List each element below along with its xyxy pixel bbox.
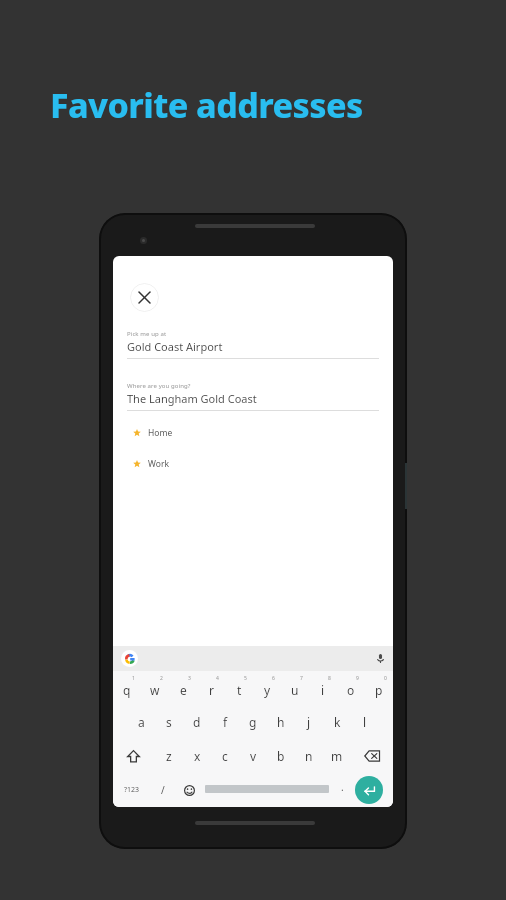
staticText: r — [209, 682, 214, 698]
button[interactable]: 3 — [169, 671, 197, 705]
button[interactable]: x — [183, 739, 211, 773]
staticText: q — [123, 682, 131, 698]
staticText: z — [166, 748, 172, 764]
button[interactable]: b — [267, 739, 295, 773]
button[interactable]: Shift — [117, 739, 149, 773]
staticText: 7 — [300, 675, 303, 682]
button[interactable]: 0 — [365, 671, 393, 705]
button[interactable]: Voice input — [374, 652, 387, 665]
button[interactable]: 8 — [309, 671, 337, 705]
staticText: v — [250, 748, 257, 764]
staticText: ?123 — [124, 785, 140, 795]
staticText: Favorite addresses — [50, 82, 363, 128]
staticText: The Langham Gold Coast — [127, 391, 257, 406]
button[interactable]: h — [267, 705, 295, 739]
button[interactable]: 7 — [281, 671, 309, 705]
staticText: Home — [148, 427, 173, 439]
button[interactable]: Google — [121, 650, 138, 667]
button[interactable]: Work — [127, 454, 379, 474]
button[interactable]: a — [127, 705, 155, 739]
button[interactable]: 5 — [225, 671, 253, 705]
staticText: x — [194, 748, 201, 764]
button[interactable]: Home — [127, 423, 379, 443]
button[interactable]: g — [239, 705, 267, 739]
staticText: t — [237, 682, 242, 698]
button[interactable]: d — [183, 705, 211, 739]
button[interactable]: Close — [130, 283, 159, 312]
staticText: a — [138, 714, 145, 730]
staticText: m — [331, 748, 343, 764]
button[interactable]: v — [239, 739, 267, 773]
staticText: g — [249, 714, 257, 730]
staticText: 2 — [160, 675, 163, 682]
button[interactable]: f — [211, 705, 239, 739]
button[interactable]: 1 — [113, 671, 141, 705]
staticText: Gold Coast Airport — [127, 339, 223, 354]
staticText: / — [161, 783, 165, 797]
button[interactable]: . — [333, 773, 351, 807]
staticText: e — [180, 682, 187, 698]
staticText: 6 — [272, 675, 275, 682]
staticText: p — [375, 682, 383, 698]
button[interactable] — [127, 378, 379, 412]
staticText: o — [347, 682, 355, 698]
staticText: . — [341, 780, 344, 794]
staticText: w — [150, 682, 160, 698]
button[interactable] — [127, 326, 379, 360]
button[interactable]: ?123 — [115, 773, 149, 807]
button[interactable]: n — [295, 739, 323, 773]
staticText: Pick me up at — [127, 330, 167, 338]
staticText: k — [334, 714, 341, 730]
button[interactable]: 9 — [337, 671, 365, 705]
staticText: s — [166, 714, 172, 730]
button[interactable]: Backspace — [355, 739, 389, 773]
button[interactable]: c — [211, 739, 239, 773]
button[interactable]: 4 — [197, 671, 225, 705]
button[interactable]: m — [323, 739, 351, 773]
staticText: 8 — [328, 675, 331, 682]
staticText: i — [321, 682, 325, 698]
staticText: 0 — [384, 675, 387, 682]
staticText: y — [264, 682, 271, 698]
button[interactable]: j — [295, 705, 323, 739]
staticText: Work — [148, 458, 169, 470]
staticText: u — [291, 682, 299, 698]
staticText: 9 — [356, 675, 359, 682]
staticText: Where are you going? — [127, 382, 191, 390]
staticText: n — [305, 748, 313, 764]
staticText: 5 — [244, 675, 247, 682]
button[interactable]: Enter — [355, 776, 383, 804]
button[interactable]: 2 — [141, 671, 169, 705]
staticText: 4 — [216, 675, 219, 682]
button[interactable]: s — [155, 705, 183, 739]
button[interactable]: Emoji — [176, 773, 202, 807]
staticText: d — [193, 714, 201, 730]
staticText: j — [307, 714, 311, 730]
button[interactable]: l — [351, 705, 379, 739]
button[interactable]: / — [151, 773, 175, 807]
staticText: 1 — [132, 675, 135, 682]
staticText: f — [223, 714, 228, 730]
button[interactable]: z — [155, 739, 183, 773]
button[interactable]: 6 — [253, 671, 281, 705]
button[interactable]: k — [323, 705, 351, 739]
staticText: b — [277, 748, 285, 764]
staticText: h — [277, 714, 285, 730]
staticText: 3 — [188, 675, 191, 682]
staticText: c — [222, 748, 228, 764]
staticText: l — [363, 714, 367, 730]
